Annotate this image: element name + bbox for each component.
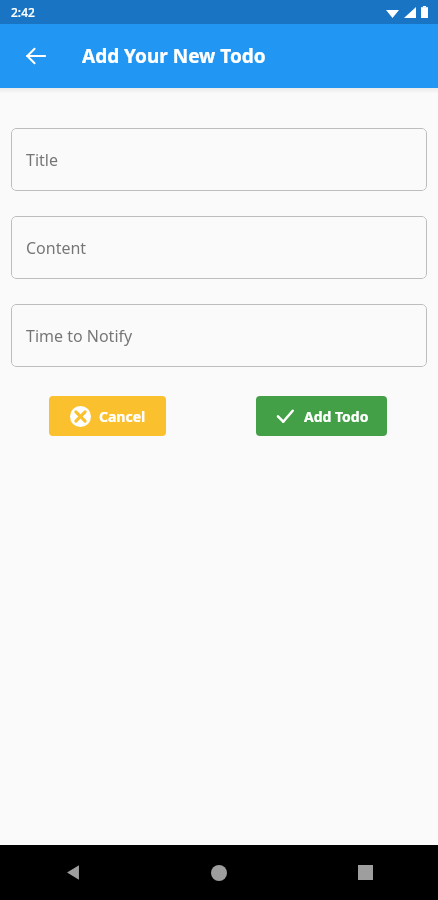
button[interactable]: Title <box>11 128 427 191</box>
button[interactable]: Content <box>11 216 427 279</box>
button[interactable]: Recents <box>292 845 438 900</box>
staticText: Add Your New Todo <box>82 43 266 69</box>
button[interactable]: Time to Notify <box>11 304 427 367</box>
button[interactable]: Cancel <box>49 396 166 436</box>
button[interactable]: Add Todo <box>256 396 387 436</box>
staticText: Time to Notify <box>26 325 133 347</box>
button[interactable]: Back <box>12 32 60 80</box>
button[interactable]: Home <box>146 845 292 900</box>
staticText: Add Todo <box>304 407 369 426</box>
button[interactable]: Back <box>0 845 146 900</box>
staticText: 2:42 <box>11 4 35 20</box>
staticText: Title <box>26 149 58 171</box>
staticText: Content <box>26 237 87 259</box>
staticText: Cancel <box>99 407 146 426</box>
